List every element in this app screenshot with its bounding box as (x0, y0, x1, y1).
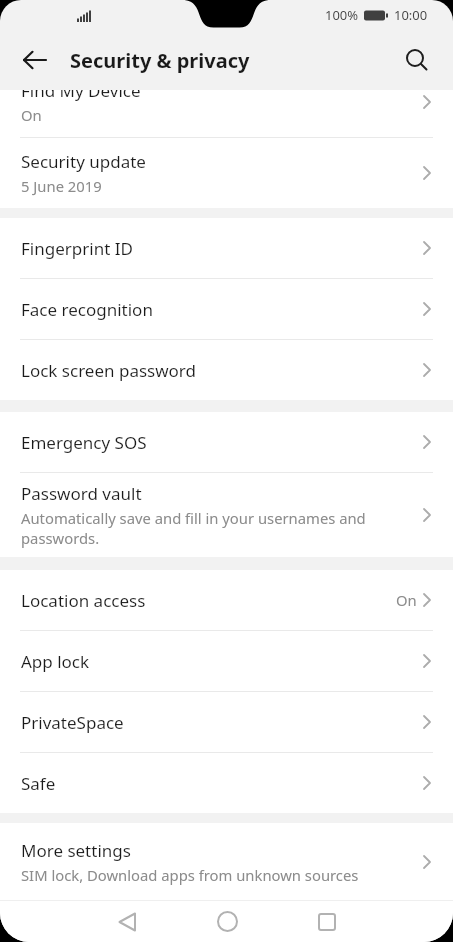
button[interactable] (14, 39, 56, 81)
staticText: Emergency SOS (21, 431, 147, 454)
button[interactable]: More settings (0, 823, 453, 900)
button[interactable]: Location access (0, 570, 453, 630)
button[interactable]: Password vault (0, 473, 453, 557)
staticText: passwords. (21, 528, 100, 548)
staticText: Safe (21, 772, 56, 795)
staticText: SIM lock, Download apps from unknown sou… (21, 865, 359, 885)
button[interactable]: Lock screen password (0, 340, 453, 400)
staticText: Fingerprint ID (21, 237, 133, 260)
button[interactable] (95, 901, 159, 942)
staticText: PrivateSpace (21, 711, 124, 734)
button[interactable]: App lock (0, 631, 453, 691)
button[interactable]: Security update (0, 138, 453, 208)
staticText: Face recognition (21, 298, 153, 321)
staticText: Automatically save and fill in your user… (21, 508, 366, 528)
staticText: Security & privacy (70, 47, 250, 74)
button[interactable] (195, 901, 259, 942)
staticText: 5 June 2019 (21, 176, 102, 196)
button[interactable]: Safe (0, 753, 453, 813)
staticText: On (396, 590, 417, 610)
staticText: Location access (21, 589, 146, 612)
staticText: 10:00 (394, 6, 428, 24)
staticText: 100% (325, 6, 359, 24)
staticText: More settings (21, 839, 131, 862)
button[interactable]: Face recognition (0, 279, 453, 339)
staticText: Security update (21, 150, 146, 173)
staticText: App lock (21, 650, 90, 673)
staticText: Find My Device (21, 90, 141, 102)
button[interactable]: Fingerprint ID (0, 218, 453, 278)
button[interactable] (295, 901, 359, 942)
button[interactable]: PrivateSpace (0, 692, 453, 752)
staticText: Password vault (21, 482, 142, 505)
button[interactable]: Find My Device (0, 90, 453, 137)
button[interactable] (397, 40, 437, 80)
staticText: Lock screen password (21, 359, 196, 382)
button[interactable]: Emergency SOS (0, 412, 453, 472)
staticText: On (21, 105, 42, 125)
